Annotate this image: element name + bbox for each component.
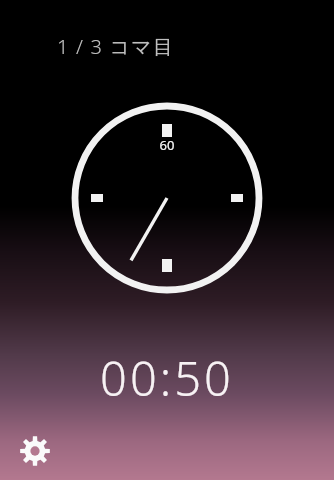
button[interactable]: Settings — [12, 428, 58, 474]
staticText: 1 / 3 コマ目 — [57, 33, 175, 60]
staticText: 60 — [0, 136, 334, 156]
button[interactable]: Timer dial — [0, 0, 334, 480]
staticText: 00:50 — [0, 346, 334, 406]
